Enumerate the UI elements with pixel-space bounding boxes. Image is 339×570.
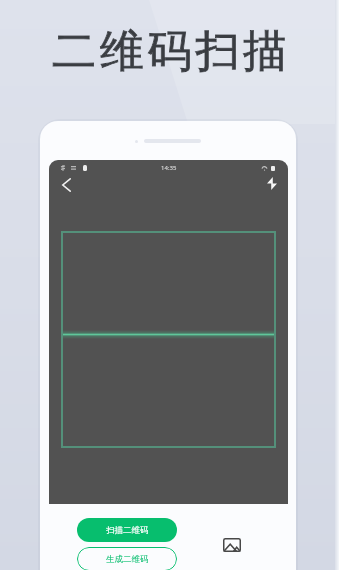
staticText: 生成二维码 [106, 554, 149, 565]
staticText: 14:35 [161, 164, 177, 172]
button[interactable]: Back [52, 171, 80, 199]
staticText: 二维码扫描 [2, 24, 339, 79]
button[interactable]: 扫描二维码 [77, 518, 177, 542]
staticText: 二维码扫描 [2, 24, 339, 79]
button[interactable]: 生成二维码 [77, 547, 177, 570]
button[interactable]: Pick image from gallery [218, 531, 246, 559]
staticText: 扫描二维码 [106, 525, 149, 536]
button[interactable]: Flash [258, 169, 286, 197]
